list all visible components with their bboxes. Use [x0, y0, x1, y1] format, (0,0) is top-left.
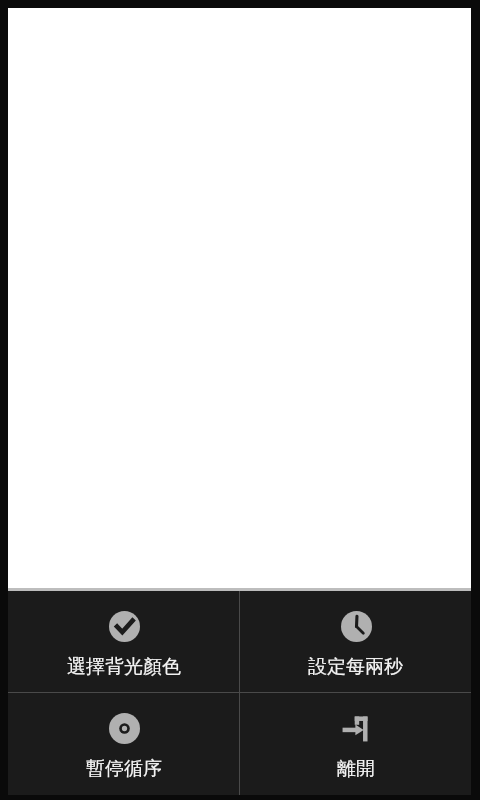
- button[interactable]: 離開: [240, 693, 471, 795]
- button[interactable]: 選擇背光顏色: [8, 591, 239, 692]
- button[interactable]: 設定每兩秒: [240, 591, 471, 692]
- staticText: 選擇背光顏色: [67, 655, 181, 679]
- staticText: 設定每兩秒: [308, 655, 403, 679]
- button[interactable]: 暫停循序: [8, 693, 239, 795]
- staticText: 離開: [337, 757, 375, 781]
- staticText: 暫停循序: [86, 757, 162, 781]
